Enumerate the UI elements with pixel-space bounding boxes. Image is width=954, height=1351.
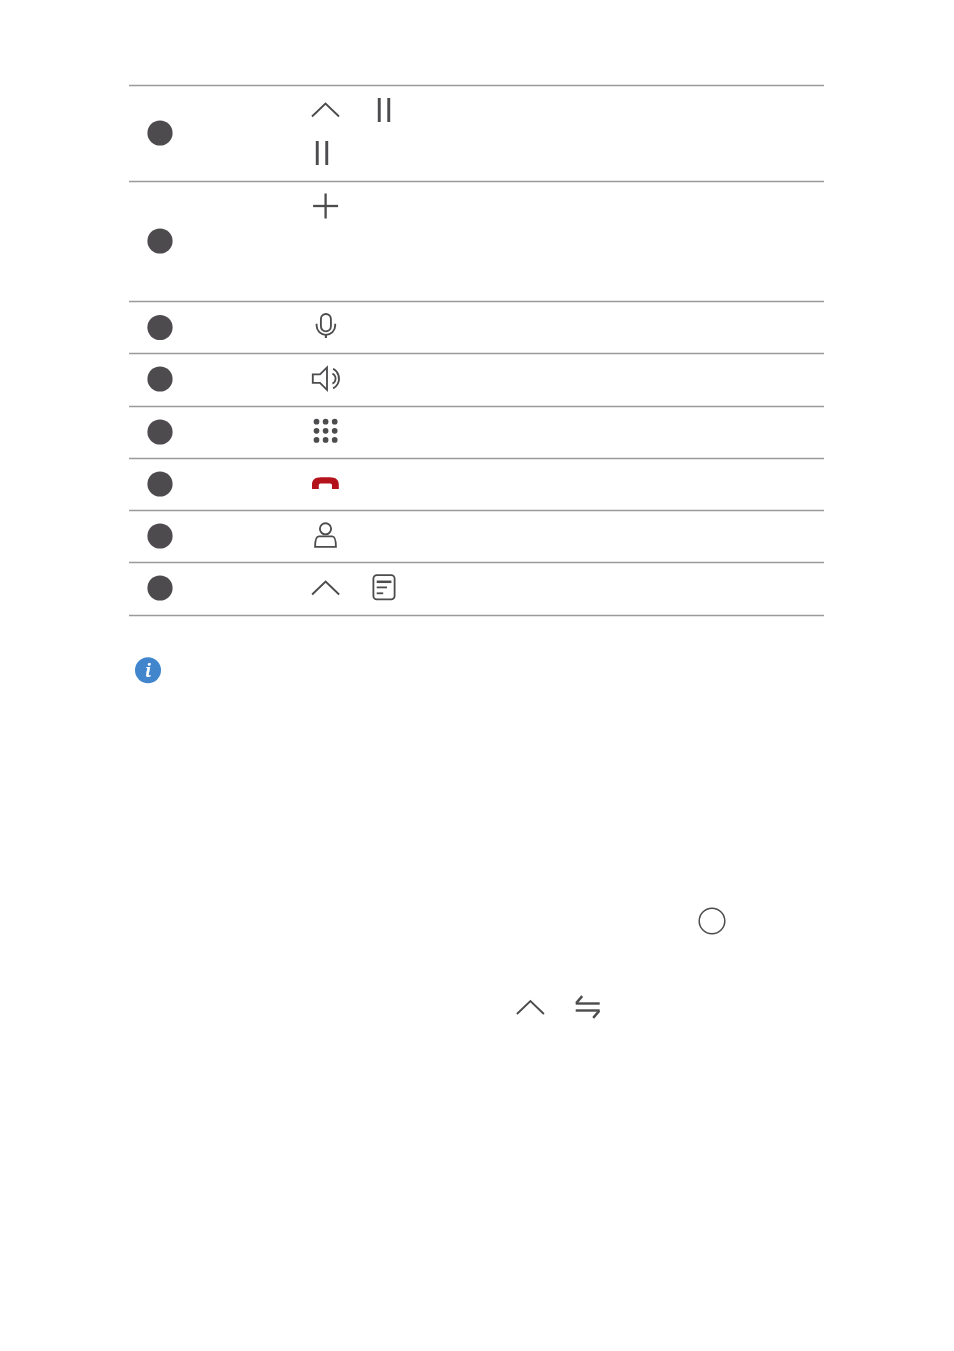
button[interactable]: Information bbox=[135, 657, 161, 683]
button[interactable]: Swap calls bbox=[574, 993, 604, 1023]
button[interactable]: Expand bbox=[516, 993, 546, 1021]
button[interactable]: Mute call bbox=[698, 907, 726, 935]
staticText: i bbox=[145, 658, 152, 683]
button[interactable]: Pause bbox=[370, 96, 398, 124]
button[interactable]: Dialpad bbox=[311, 416, 341, 446]
button[interactable]: Call notes bbox=[371, 573, 399, 603]
button[interactable]: Mute microphone bbox=[311, 311, 341, 341]
button[interactable]: Expand bbox=[311, 574, 341, 602]
button[interactable]: Contacts bbox=[311, 521, 341, 551]
button[interactable]: Hold bbox=[308, 139, 336, 167]
button[interactable]: End call bbox=[311, 470, 341, 498]
button[interactable]: Speaker bbox=[311, 364, 341, 394]
button[interactable]: Expand bbox=[310, 96, 342, 124]
button[interactable]: Add call bbox=[311, 192, 341, 220]
